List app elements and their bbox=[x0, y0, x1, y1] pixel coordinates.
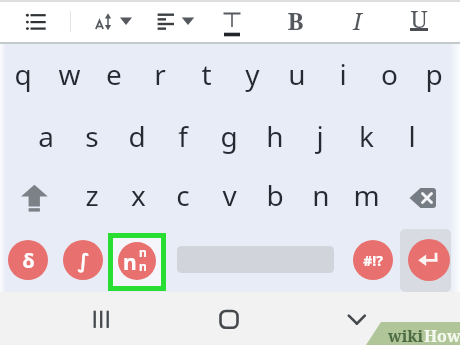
button[interactable]: s bbox=[70, 114, 114, 158]
button[interactable]: Integral bbox=[63, 240, 103, 280]
staticText: e bbox=[106, 55, 122, 93]
button[interactable]: q bbox=[1, 52, 45, 96]
staticText: a bbox=[38, 117, 54, 155]
button[interactable]: z bbox=[70, 173, 114, 217]
staticText: r bbox=[154, 55, 166, 93]
button[interactable]: t bbox=[184, 52, 228, 96]
button[interactable]: l bbox=[390, 114, 434, 158]
button[interactable]: Back bbox=[335, 292, 379, 336]
button[interactable]: Italic bbox=[341, 3, 373, 39]
staticText: n bbox=[312, 176, 330, 214]
staticText: b bbox=[266, 176, 284, 214]
button[interactable]: o bbox=[367, 52, 411, 96]
button[interactable]: r bbox=[138, 52, 182, 96]
button[interactable]: Home bbox=[207, 292, 251, 336]
staticText: h bbox=[266, 117, 284, 155]
staticText: u bbox=[288, 55, 306, 93]
button[interactable]: Shift bbox=[12, 178, 56, 218]
button[interactable]: k bbox=[344, 114, 388, 158]
staticText: q bbox=[14, 55, 32, 93]
staticText: o bbox=[381, 55, 398, 93]
button[interactable]: Font size bbox=[88, 4, 138, 40]
staticText: U bbox=[410, 2, 428, 35]
staticText: n bbox=[139, 258, 147, 274]
staticText: j bbox=[316, 117, 324, 155]
button[interactable]: p bbox=[412, 52, 456, 96]
staticText: z bbox=[85, 176, 99, 214]
button[interactable]: y bbox=[230, 52, 274, 96]
staticText: d bbox=[128, 117, 146, 155]
staticText: x bbox=[131, 176, 146, 214]
button[interactable]: i bbox=[321, 52, 365, 96]
button[interactable]: e bbox=[92, 52, 136, 96]
button[interactable]: f bbox=[161, 114, 205, 158]
button[interactable]: Superscript subscript bbox=[118, 242, 156, 280]
staticText: ∫ bbox=[77, 249, 90, 272]
button[interactable]: Backspace bbox=[401, 178, 445, 218]
button[interactable]: Underline bbox=[403, 3, 435, 39]
button[interactable]: Bold bbox=[279, 3, 311, 39]
button[interactable]: Delta bbox=[8, 240, 48, 280]
button[interactable]: n bbox=[299, 173, 343, 217]
button[interactable]: g bbox=[207, 114, 251, 158]
button[interactable]: Symbols bbox=[353, 240, 393, 280]
staticText: wiki bbox=[388, 325, 424, 345]
staticText: #!? bbox=[363, 251, 383, 270]
button[interactable]: d bbox=[115, 114, 159, 158]
staticText: w bbox=[58, 55, 81, 93]
staticText: n bbox=[123, 248, 137, 277]
staticText: s bbox=[85, 117, 99, 155]
staticText: B bbox=[287, 4, 304, 37]
button[interactable]: Bulleted list bbox=[12, 6, 60, 38]
staticText: How bbox=[424, 325, 460, 345]
button[interactable]: Enter bbox=[400, 229, 451, 292]
button[interactable]: b bbox=[253, 173, 297, 217]
button[interactable]: w bbox=[47, 52, 91, 96]
staticText: k bbox=[359, 117, 374, 155]
button[interactable]: x bbox=[116, 173, 160, 217]
staticText: n bbox=[139, 244, 147, 260]
button[interactable]: v bbox=[207, 173, 251, 217]
staticText: m bbox=[353, 176, 380, 214]
button[interactable]: Alignment bbox=[152, 4, 202, 40]
button[interactable]: c bbox=[161, 173, 205, 217]
button[interactable]: Recents bbox=[79, 292, 123, 336]
button[interactable]: h bbox=[253, 114, 297, 158]
staticText: i bbox=[339, 55, 347, 93]
button[interactable]: a bbox=[24, 114, 68, 158]
staticText: f bbox=[178, 117, 188, 155]
button[interactable]: u bbox=[275, 52, 319, 96]
button[interactable]: m bbox=[344, 173, 388, 217]
staticText: c bbox=[176, 176, 190, 214]
staticText: y bbox=[245, 55, 260, 93]
staticText: v bbox=[222, 176, 237, 214]
button[interactable]: Text color bbox=[216, 4, 248, 42]
staticText: p bbox=[425, 55, 443, 93]
staticText: l bbox=[408, 117, 416, 155]
staticText: g bbox=[220, 117, 238, 155]
staticText: I bbox=[353, 4, 362, 37]
staticText: δ bbox=[22, 247, 35, 274]
staticText: t bbox=[201, 55, 212, 93]
button[interactable]: j bbox=[298, 114, 342, 158]
